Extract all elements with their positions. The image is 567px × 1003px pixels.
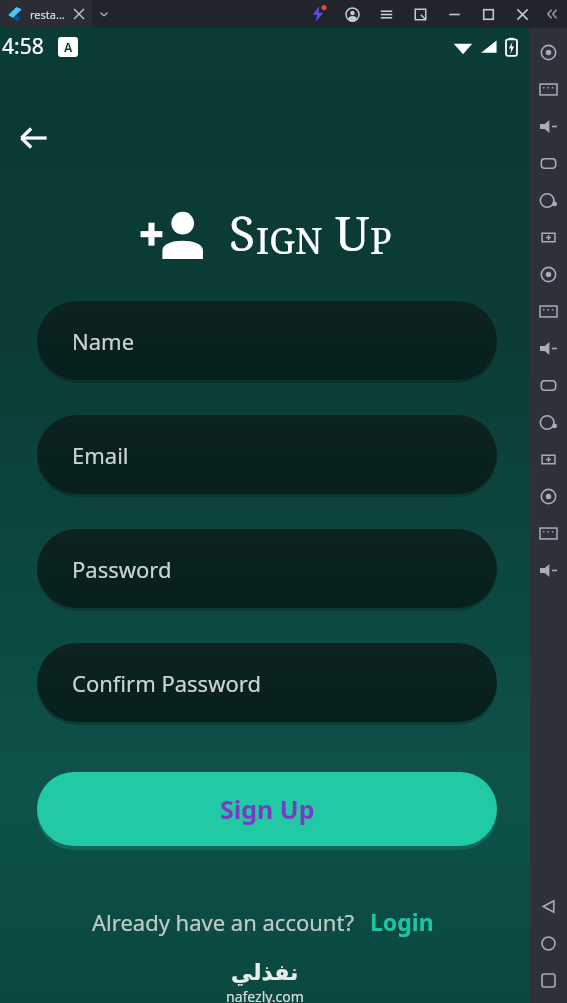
button[interactable]: Recents bbox=[530, 962, 567, 999]
button[interactable]: Login bbox=[370, 906, 434, 937]
staticText: Email bbox=[72, 440, 129, 470]
staticText: Already have an account? bbox=[92, 907, 354, 937]
button[interactable]: Location bbox=[530, 515, 567, 552]
button[interactable]: Zoom bbox=[530, 256, 567, 293]
staticText: IGN bbox=[256, 216, 323, 265]
staticText: Sign Up bbox=[220, 792, 315, 826]
button[interactable]: Maximize bbox=[471, 0, 505, 28]
button[interactable]: Volume down bbox=[530, 145, 567, 182]
button[interactable]: Name bbox=[37, 301, 497, 380]
staticText: 4:58 bbox=[2, 32, 44, 61]
button[interactable]: Collapse bbox=[539, 0, 567, 28]
button[interactable]: Restore bbox=[403, 0, 437, 28]
button[interactable]: Folder bbox=[530, 478, 567, 515]
staticText: resta... bbox=[30, 7, 65, 22]
staticText: A bbox=[64, 39, 73, 55]
staticText: Confirm Password bbox=[72, 668, 261, 698]
staticText: U bbox=[335, 200, 370, 265]
button[interactable]: Close window bbox=[505, 0, 539, 28]
button[interactable]: Back bbox=[8, 112, 60, 164]
button[interactable]: Gifts bbox=[530, 552, 567, 589]
button[interactable]: Back bbox=[530, 888, 567, 925]
button[interactable]: Fold bbox=[530, 441, 567, 478]
button[interactable]: Volume up bbox=[530, 108, 567, 145]
button[interactable]: resta... bbox=[0, 0, 92, 28]
button[interactable]: Cut bbox=[530, 330, 567, 367]
button[interactable]: Run bbox=[301, 0, 335, 28]
button[interactable]: Account bbox=[335, 0, 369, 28]
button[interactable]: Back to top bbox=[530, 293, 567, 330]
staticText: P bbox=[370, 216, 392, 265]
button[interactable]: Camera bbox=[530, 34, 567, 71]
staticText: nafezly.com bbox=[226, 987, 304, 1003]
button[interactable]: Sign Up bbox=[37, 772, 497, 846]
button[interactable]: Email bbox=[37, 415, 497, 494]
staticText: Login bbox=[370, 906, 434, 937]
staticText: نفذلي bbox=[231, 960, 299, 986]
button[interactable]: More tabs bbox=[98, 8, 110, 20]
button[interactable]: Screenshot bbox=[530, 219, 567, 256]
staticText: S bbox=[229, 200, 256, 265]
button[interactable]: Play bbox=[530, 367, 567, 404]
staticText: Name bbox=[72, 326, 135, 356]
button[interactable]: Confirm Password bbox=[37, 643, 497, 722]
button[interactable]: Settings bbox=[530, 404, 567, 441]
button[interactable]: Home bbox=[530, 925, 567, 962]
button[interactable]: Close tab bbox=[74, 9, 84, 19]
button[interactable]: Minimize bbox=[437, 0, 471, 28]
button[interactable]: Keyboard bbox=[530, 71, 567, 108]
staticText: Password bbox=[72, 554, 172, 584]
button[interactable]: Password bbox=[37, 529, 497, 608]
button[interactable]: Menu bbox=[369, 0, 403, 28]
button[interactable]: Rotate bbox=[530, 182, 567, 219]
